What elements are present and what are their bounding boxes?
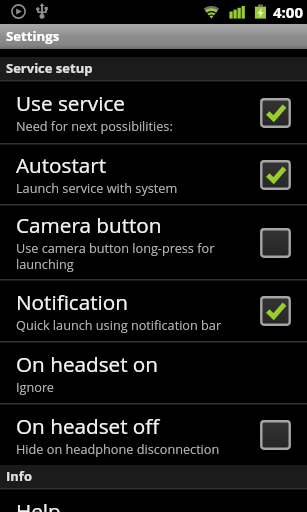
staticText: Autostart bbox=[16, 151, 107, 179]
button[interactable]: Camera button bbox=[0, 206, 307, 279]
button[interactable]: Autostart bbox=[0, 145, 307, 204]
staticText: Need for next possibilities: bbox=[16, 117, 173, 134]
button[interactable]: On headset off bbox=[0, 405, 307, 465]
staticText: Quick launch using notification bar bbox=[16, 316, 222, 333]
staticText: On headset on bbox=[16, 350, 159, 378]
button[interactable]: Notification bbox=[0, 281, 307, 341]
button[interactable]: Use service bbox=[0, 82, 307, 143]
button[interactable]: On headset on bbox=[0, 343, 307, 403]
staticText: Use camera button long-press for launchi… bbox=[16, 239, 252, 272]
staticText: Hide on headphone disconnection bbox=[16, 440, 220, 457]
staticText: Ignore bbox=[16, 378, 54, 395]
staticText: 4:00 bbox=[273, 2, 303, 22]
staticText: Service setup bbox=[6, 59, 93, 77]
staticText: Info bbox=[6, 467, 32, 485]
staticText: Camera button bbox=[16, 211, 162, 239]
staticText: Launch service with system bbox=[16, 179, 178, 196]
staticText: Notification bbox=[16, 288, 128, 316]
staticText: On headset off bbox=[16, 412, 160, 440]
staticText: Use service bbox=[16, 89, 125, 117]
staticText: Settings bbox=[6, 27, 60, 45]
staticText: Help bbox=[16, 497, 61, 512]
button[interactable]: Help bbox=[0, 490, 307, 512]
